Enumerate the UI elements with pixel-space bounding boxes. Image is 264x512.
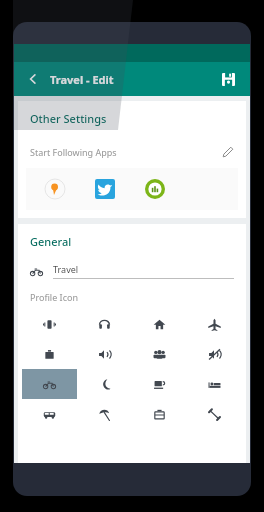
button[interactable]: Icon 14 bbox=[132, 399, 187, 429]
button[interactable]: Icon 6 bbox=[132, 339, 187, 369]
button[interactable]: App 1 bbox=[44, 178, 66, 200]
other: Edit bbox=[220, 144, 236, 160]
button[interactable]: Icon 11 bbox=[187, 369, 242, 399]
button[interactable]: Icon 5 bbox=[77, 339, 132, 369]
button[interactable]: Save bbox=[216, 67, 240, 91]
staticText: Other Settings bbox=[30, 111, 107, 126]
staticText: Start Following Apps bbox=[30, 146, 117, 158]
button[interactable]: Icon 10 bbox=[132, 369, 187, 399]
button[interactable]: Twitter bbox=[94, 178, 116, 200]
button[interactable]: Icon 1 bbox=[77, 309, 132, 339]
button[interactable]: Icon 13 bbox=[77, 399, 132, 429]
button[interactable]: Chart app bbox=[144, 178, 166, 200]
button[interactable]: Icon 7 bbox=[187, 339, 242, 369]
button[interactable]: Icon 4 bbox=[22, 339, 77, 369]
button[interactable]: Icon 9 bbox=[77, 369, 132, 399]
staticText: General bbox=[30, 234, 72, 249]
button[interactable]: Icon 15 bbox=[187, 399, 242, 429]
button[interactable]: Icon 12 bbox=[22, 399, 77, 429]
button[interactable]: Back bbox=[22, 68, 44, 90]
button[interactable]: Start Following Apps bbox=[18, 144, 246, 160]
button[interactable]: Travel bbox=[18, 263, 246, 279]
staticText: Travel - Edit bbox=[50, 72, 114, 87]
button[interactable]: Icon 3 bbox=[187, 309, 242, 339]
button[interactable]: Icon 2 bbox=[132, 309, 187, 339]
button[interactable]: Icon 8 bbox=[22, 369, 77, 399]
staticText: Travel bbox=[53, 263, 79, 275]
button[interactable]: Icon 0 bbox=[22, 309, 77, 339]
staticText: Profile Icon bbox=[30, 291, 78, 303]
